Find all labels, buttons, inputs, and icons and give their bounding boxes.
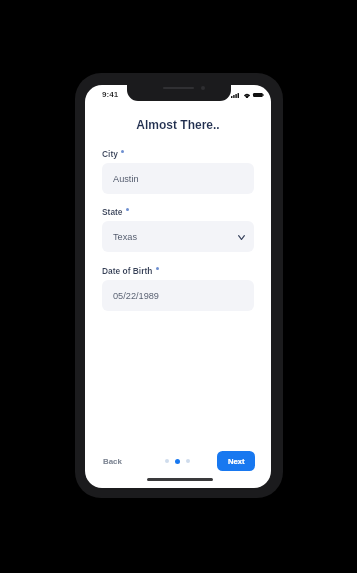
button[interactable]: Back [99, 453, 126, 470]
button[interactable]: Austin [102, 163, 254, 194]
button[interactable]: Texas [102, 221, 254, 252]
staticText: 05/22/1989 [113, 291, 159, 301]
other: Open state list [238, 235, 245, 240]
staticText: State [102, 207, 123, 216]
staticText: Next [228, 457, 245, 466]
other: Cellular signal [231, 93, 239, 98]
staticText: Austin [113, 174, 139, 184]
staticText: City [102, 149, 118, 158]
other: Battery [253, 93, 264, 97]
button[interactable]: 05/22/1989 [102, 280, 254, 311]
other: Wi-Fi [243, 92, 251, 98]
staticText: Date of Birth [102, 266, 153, 275]
staticText: 9:41 [102, 90, 119, 99]
staticText: Almost There.. [85, 118, 271, 131]
staticText: Back [103, 457, 122, 466]
staticText: Texas [113, 232, 137, 242]
button[interactable]: Next [217, 451, 255, 471]
